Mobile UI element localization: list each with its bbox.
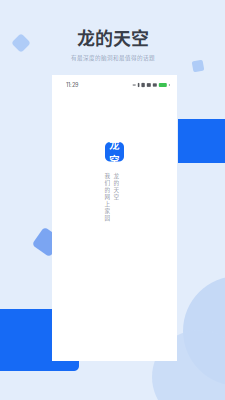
staticText: 天 <box>114 185 120 193</box>
staticText: 家 <box>104 206 110 214</box>
staticText: 网 <box>104 192 110 200</box>
staticText: 有最深度的脑洞和最值得的话题 <box>71 53 155 62</box>
staticText: 们 <box>104 178 110 186</box>
staticText: 的 <box>104 185 110 193</box>
staticText: 龙空 <box>109 136 120 167</box>
staticText: 11:29 <box>66 82 78 88</box>
staticText: 的 <box>114 178 120 186</box>
staticText: 上 <box>104 199 110 207</box>
staticText: 龙的天空 <box>77 24 149 50</box>
staticText: 空 <box>114 192 120 200</box>
staticText: 园 <box>104 213 110 221</box>
staticText: 我 <box>104 171 110 179</box>
staticText: 龙 <box>114 171 120 179</box>
